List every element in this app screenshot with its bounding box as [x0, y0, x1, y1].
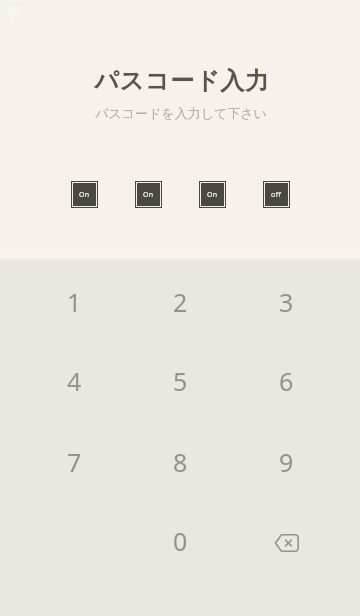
button[interactable]: 7 [21, 422, 127, 501]
button[interactable]: 6 [233, 341, 339, 420]
staticText: 5 [173, 364, 188, 398]
button[interactable]: Passcode digit entered [71, 181, 98, 208]
button[interactable]: 9 [233, 422, 339, 501]
staticText: 1 [67, 285, 82, 319]
staticText: パスコード入力 [94, 66, 270, 96]
button[interactable]: Backspace [233, 501, 339, 580]
staticText: off [271, 190, 282, 200]
staticText: 2 [173, 285, 188, 319]
staticText: 8 [173, 445, 188, 479]
staticText: On [143, 190, 154, 200]
button[interactable]: 1 [21, 262, 127, 341]
button[interactable]: 8 [127, 422, 233, 501]
button[interactable]: 0 [127, 501, 233, 580]
button[interactable]: Passcode digit entered [199, 181, 226, 208]
staticText: 9 [279, 445, 294, 479]
staticText: On [207, 190, 218, 200]
button[interactable]: Passcode digit entered [135, 181, 162, 208]
button[interactable]: 5 [127, 341, 233, 420]
staticText: 4 [67, 364, 82, 398]
staticText: 6 [279, 364, 294, 398]
staticText: On [79, 190, 90, 200]
staticText: 7 [67, 445, 82, 479]
staticText: パスコードを入力して下さい [95, 105, 267, 121]
button[interactable]: 4 [21, 341, 127, 420]
button[interactable]: 2 [127, 262, 233, 341]
button[interactable]: Passcode digit empty [263, 181, 290, 208]
button[interactable]: 3 [233, 262, 339, 341]
staticText: 0 [173, 524, 188, 558]
staticText: 3 [279, 285, 294, 319]
